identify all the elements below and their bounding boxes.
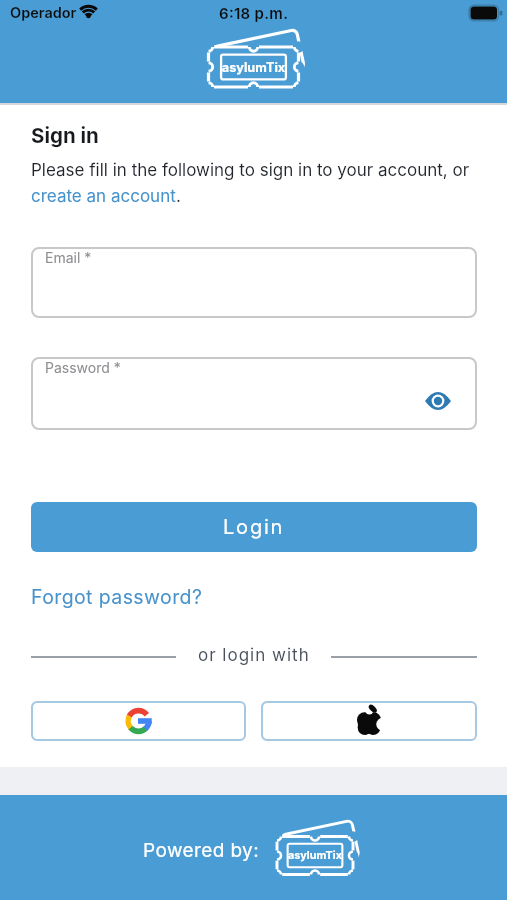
staticText: Login <box>223 515 285 539</box>
staticText: create an account <box>31 186 176 207</box>
staticText: Sign in <box>31 123 99 148</box>
staticText: . <box>176 186 181 207</box>
button[interactable]: create an account <box>31 186 176 207</box>
staticText: Please fill in the following to sign in … <box>31 160 470 181</box>
button[interactable] <box>261 701 477 741</box>
button[interactable] <box>31 701 246 741</box>
staticText: 6:18 p.m. <box>219 4 289 22</box>
staticText: Password * <box>45 359 121 376</box>
staticText: Operador <box>10 4 77 22</box>
staticText: or login with <box>198 645 310 666</box>
button[interactable]: Forgot password? <box>31 585 203 609</box>
button[interactable]: Login <box>31 502 477 552</box>
button[interactable]: Email * <box>31 247 477 318</box>
button[interactable] <box>424 390 452 412</box>
button[interactable]: Password * <box>31 357 477 430</box>
staticText: asylumTix <box>215 60 292 75</box>
staticText: Powered by: <box>143 839 260 862</box>
staticText: Email * <box>45 249 92 266</box>
staticText: asylumTix <box>283 849 347 862</box>
